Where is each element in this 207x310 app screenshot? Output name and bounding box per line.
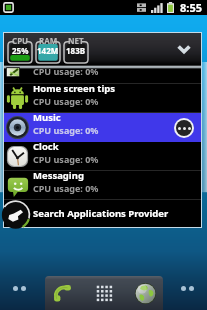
button[interactable]: Home screen tips <box>4 84 201 113</box>
button[interactable]: Browser <box>135 283 156 304</box>
staticText: CPU usage: 0% <box>33 124 99 136</box>
staticText: CPU usage: 0% <box>33 153 99 165</box>
staticText: Search Applications Provider <box>33 207 169 220</box>
button[interactable]: Music <box>4 113 201 142</box>
staticText: 8:55 <box>180 0 202 15</box>
button[interactable]: More options <box>176 120 192 136</box>
button[interactable]: Collapse widget <box>173 39 195 59</box>
staticText: CPU usage: 0% <box>33 182 99 194</box>
staticText: CPU usage: 0% <box>33 65 99 77</box>
staticText: Music <box>33 111 61 124</box>
staticText: NET <box>68 35 84 46</box>
button[interactable]: Search Applications Provider <box>4 200 201 227</box>
staticText: 25% <box>12 45 29 56</box>
button[interactable]: CPU usage: 0% <box>4 69 201 84</box>
staticText: 142M <box>37 45 59 56</box>
staticText: 183B <box>66 45 86 56</box>
staticText: CPU <box>12 35 29 46</box>
staticText: Home screen tips <box>33 82 116 95</box>
button[interactable]: Clock <box>4 142 201 171</box>
staticText: Messaging <box>33 169 84 182</box>
staticText: CPU usage: 0% <box>33 95 99 107</box>
staticText: RAM <box>39 35 58 46</box>
button[interactable]: Messaging <box>4 171 201 200</box>
button[interactable]: Phone <box>52 283 73 304</box>
button[interactable]: All apps <box>94 283 115 304</box>
staticText: Clock <box>33 140 59 153</box>
